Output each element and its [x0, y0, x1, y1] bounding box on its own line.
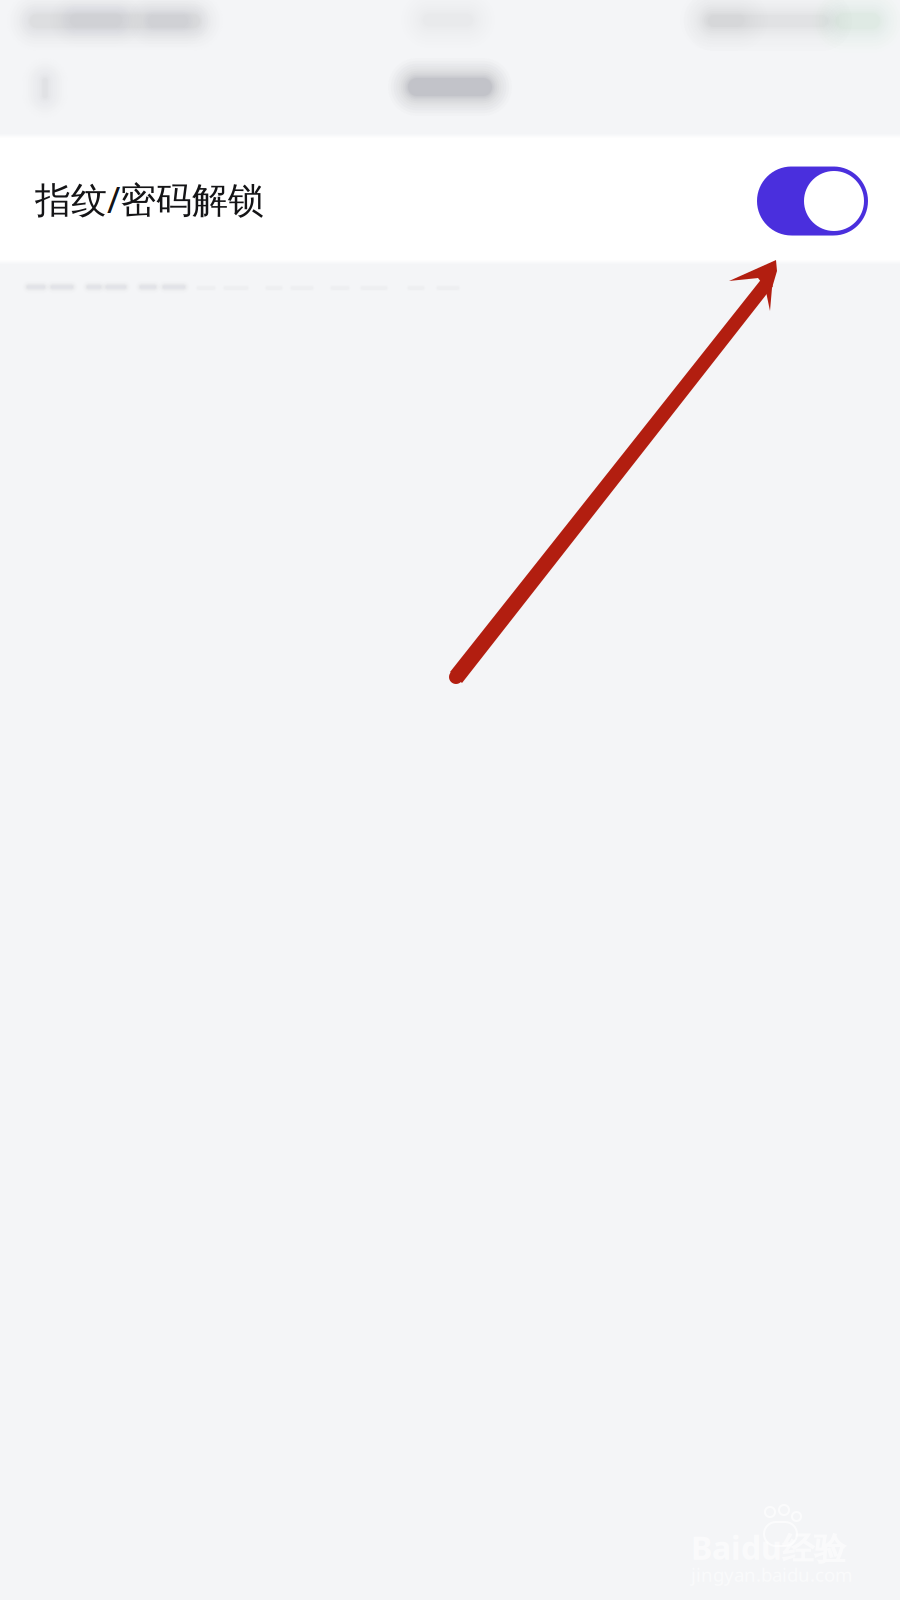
- staticText: 指纹/密码解锁: [35, 175, 264, 223]
- button[interactable]: 指纹/密码解锁: [0, 139, 900, 259]
